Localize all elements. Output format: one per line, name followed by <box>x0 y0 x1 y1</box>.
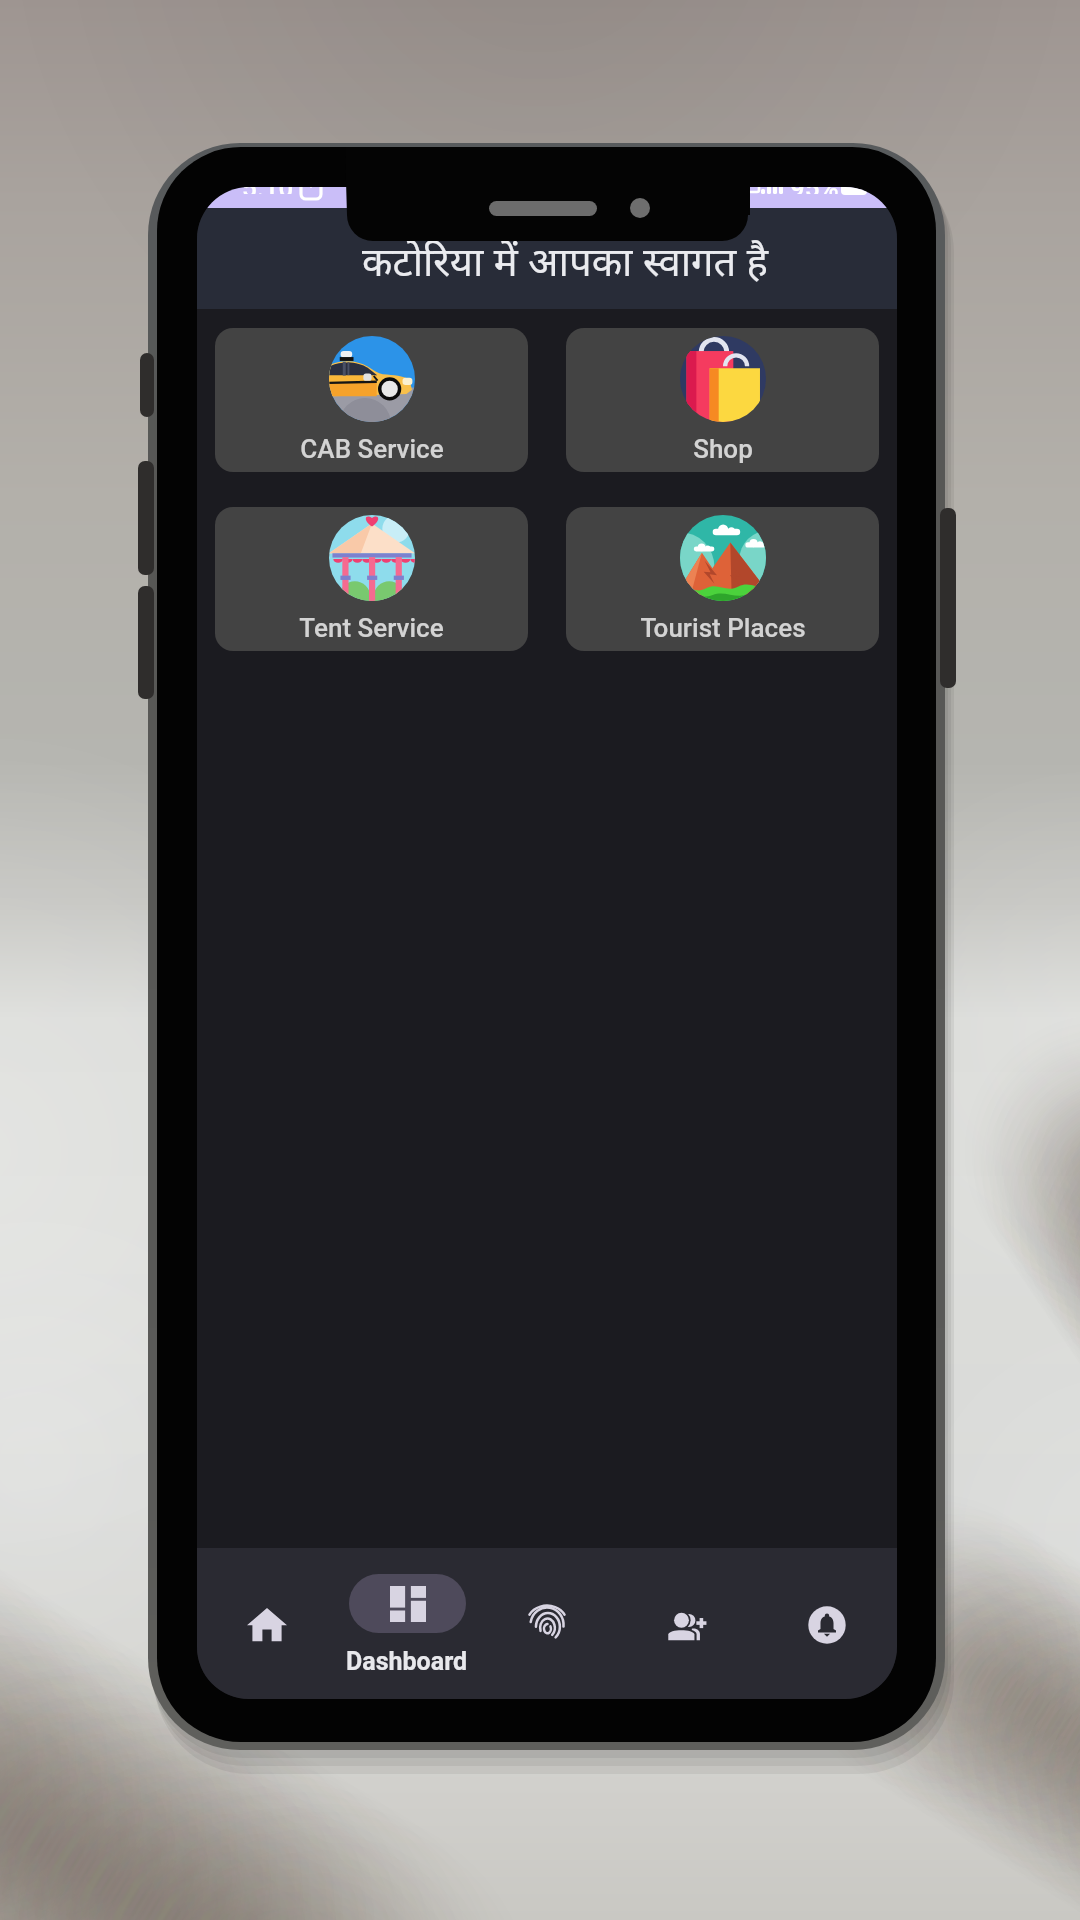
staticText: Dashboard <box>346 1647 468 1676</box>
staticText: CAB Service <box>300 434 444 464</box>
button[interactable]: Add contact <box>617 1548 757 1699</box>
staticText: Tourist Places <box>640 613 806 643</box>
staticText: 95% <box>790 187 839 194</box>
button[interactable]: Home <box>197 1548 337 1699</box>
button[interactable]: Shop <box>566 328 879 472</box>
button[interactable]: Notifications <box>757 1548 897 1699</box>
button[interactable]: Dashboard <box>337 1548 477 1699</box>
button[interactable]: Fingerprint <box>477 1548 617 1699</box>
staticText: Tent Service <box>299 613 444 643</box>
staticText: Shop <box>693 434 753 464</box>
staticText: 5:10 <box>242 187 294 194</box>
button[interactable]: Tent Service <box>215 507 528 651</box>
button[interactable]: CAB Service <box>215 328 528 472</box>
staticText: कटोरिया में आपका स्वागत है <box>362 233 768 287</box>
button[interactable]: Tourist Places <box>566 507 879 651</box>
